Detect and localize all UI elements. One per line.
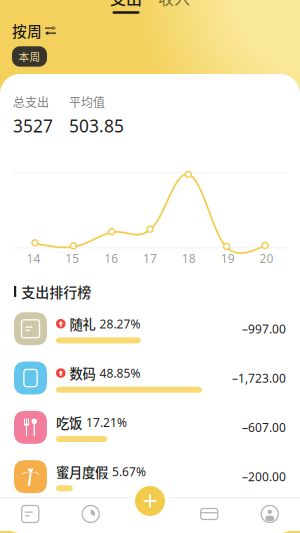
staticText: 本周 xyxy=(18,49,40,64)
staticText: 19 xyxy=(221,250,235,266)
button[interactable]: 数码 xyxy=(0,353,300,403)
button[interactable]: 按周 xyxy=(12,20,56,41)
staticText: 17.21% xyxy=(86,414,127,430)
button[interactable]: Me xyxy=(239,497,300,531)
button[interactable]: 本周 xyxy=(12,46,47,67)
button[interactable]: Bills xyxy=(0,497,60,531)
staticText: 平均值 xyxy=(69,93,105,110)
staticText: 28.27% xyxy=(99,316,140,332)
staticText: 20 xyxy=(260,250,274,266)
staticText: 支出 xyxy=(110,0,142,9)
staticText: 503.85 xyxy=(69,114,124,137)
staticText: 3527 xyxy=(13,114,53,137)
button[interactable]: Add xyxy=(131,482,169,520)
staticText: 吃饭 xyxy=(56,413,82,432)
staticText: 18 xyxy=(182,250,196,266)
staticText: 48.85% xyxy=(99,365,140,381)
staticText: 支出排行榜 xyxy=(21,281,91,302)
staticText: 蜜月度假 xyxy=(56,462,108,481)
button[interactable]: 收入 xyxy=(158,0,190,14)
staticText: –200.00 xyxy=(242,469,286,485)
staticText: 随礼 xyxy=(69,314,95,333)
staticText: 16 xyxy=(104,250,118,266)
button[interactable]: 蜜月度假 xyxy=(0,452,300,501)
staticText: 15 xyxy=(65,250,79,266)
staticText: 按周 xyxy=(12,20,42,41)
staticText: 总支出 xyxy=(13,93,49,110)
staticText: 数码 xyxy=(69,363,95,383)
staticText: 5.67% xyxy=(112,464,146,480)
staticText: –1,723.00 xyxy=(232,370,286,386)
button[interactable]: 随礼 xyxy=(0,304,300,353)
staticText: 17 xyxy=(143,250,157,266)
button[interactable]: Statistics xyxy=(60,497,121,531)
staticText: 14 xyxy=(26,250,40,266)
staticText: –997.00 xyxy=(242,321,286,337)
staticText: 收入 xyxy=(158,0,190,9)
button[interactable]: 吃饭 xyxy=(0,403,300,452)
button[interactable]: Assets xyxy=(179,497,239,531)
button[interactable]: 支出 xyxy=(110,0,142,14)
staticText: –607.00 xyxy=(242,419,286,435)
